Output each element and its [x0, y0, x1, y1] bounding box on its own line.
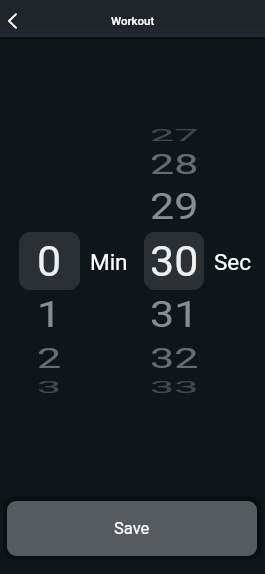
staticText: 32: [150, 342, 199, 374]
staticText: Min: [90, 249, 128, 275]
button[interactable]: Seconds: [144, 232, 204, 290]
staticText: 28: [150, 148, 199, 180]
staticText: 0: [37, 236, 62, 286]
button[interactable]: Minutes: [19, 232, 80, 290]
button[interactable]: Back: [0, 2, 25, 39]
staticText: 31: [150, 293, 199, 335]
staticText: Workout: [111, 14, 155, 27]
staticText: Save: [114, 519, 150, 538]
button[interactable]: Save: [7, 501, 257, 556]
staticText: 27: [150, 126, 199, 144]
staticText: 1: [37, 293, 62, 335]
staticText: 29: [150, 185, 199, 227]
staticText: Sec: [214, 249, 252, 275]
staticText: 33: [150, 378, 199, 396]
staticText: 30: [150, 236, 199, 286]
staticText: 2: [37, 342, 62, 374]
staticText: 3: [37, 378, 62, 396]
